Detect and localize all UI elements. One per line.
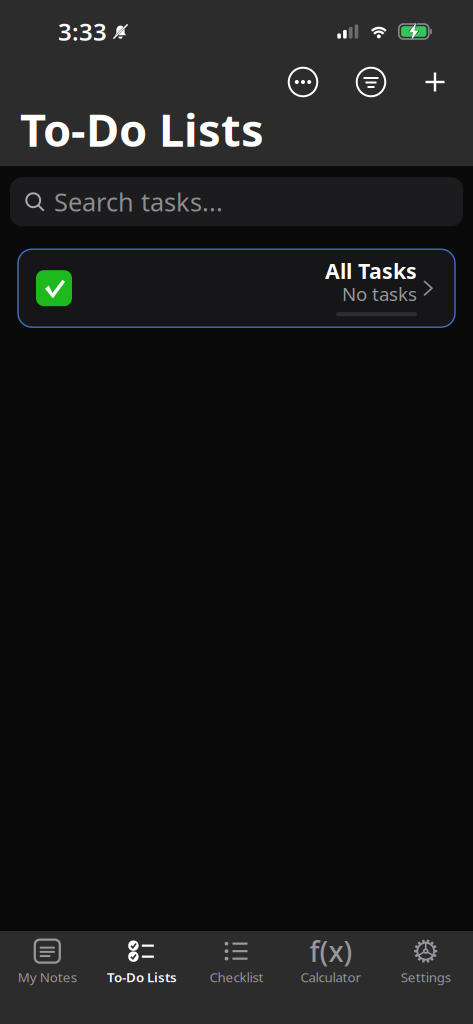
button[interactable]: Add list <box>412 59 458 105</box>
staticText: Checklist <box>209 968 263 986</box>
staticText: Settings <box>401 968 451 986</box>
button[interactable]: Settings <box>378 931 473 993</box>
button[interactable]: Checklist <box>189 931 284 993</box>
staticText: Calculator <box>301 968 362 986</box>
staticText: All Tasks <box>325 256 417 285</box>
button[interactable]: Search tasks... <box>10 177 463 226</box>
button[interactable]: My Notes <box>0 931 95 993</box>
staticText: To-Do Lists <box>20 99 264 159</box>
staticText: My Notes <box>18 968 77 986</box>
button[interactable]: All Tasks <box>18 249 455 327</box>
button[interactable]: More <box>280 59 326 105</box>
staticText: No tasks <box>342 281 417 306</box>
staticText: To-Do Lists <box>107 968 177 986</box>
button[interactable]: To-Do Lists <box>95 931 189 993</box>
staticText: Search tasks... <box>54 185 223 218</box>
staticText: f(x) <box>310 933 353 970</box>
staticText: 3:33 <box>58 16 107 47</box>
button[interactable]: f(x) <box>284 931 378 993</box>
button[interactable]: Sort <box>348 59 394 105</box>
